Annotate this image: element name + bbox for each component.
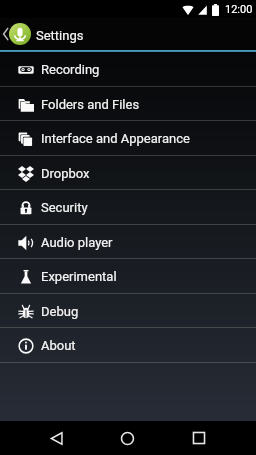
button[interactable]: Recent apps — [163, 421, 234, 455]
button[interactable]: Navigate up — [0, 18, 256, 50]
button[interactable]: Recording — [0, 52, 256, 87]
staticText: Settings — [36, 28, 84, 43]
staticText: Folders and Files — [41, 97, 140, 112]
staticText: Debug — [41, 304, 79, 319]
button[interactable]: Audio player — [0, 225, 256, 260]
button[interactable]: Interface and Appearance — [0, 121, 256, 156]
staticText: Interface and Appearance — [41, 131, 190, 146]
button[interactable]: Home — [92, 421, 163, 455]
staticText: Recording — [41, 62, 100, 77]
staticText: Dropbox — [41, 166, 90, 181]
button[interactable]: Security — [0, 190, 256, 225]
button[interactable]: Experimental — [0, 259, 256, 294]
button[interactable]: Folders and Files — [0, 87, 256, 122]
button[interactable]: Back — [21, 421, 92, 455]
button[interactable]: Dropbox — [0, 156, 256, 191]
staticText: 12:00 — [225, 3, 253, 16]
button[interactable]: About — [0, 328, 256, 363]
staticText: Audio player — [41, 235, 113, 250]
staticText: Experimental — [41, 269, 117, 284]
staticText: About — [41, 338, 76, 353]
button[interactable]: Debug — [0, 294, 256, 329]
staticText: Security — [41, 200, 88, 215]
